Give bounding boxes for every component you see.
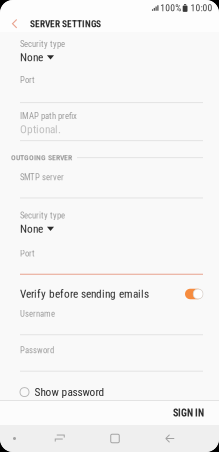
button[interactable]: IMAP path prefix — [20, 111, 203, 136]
button[interactable]: Back — [159, 425, 181, 452]
staticText: 100% — [160, 2, 181, 14]
staticText: 10:00 — [190, 2, 212, 14]
button[interactable]: Port — [20, 248, 203, 273]
button[interactable]: Username — [20, 309, 203, 333]
button[interactable]: Security type — [20, 39, 203, 64]
staticText: None — [20, 222, 43, 235]
button[interactable]: Home — [104, 425, 126, 452]
button[interactable]: Back — [0, 16, 30, 32]
staticText: Security type — [20, 210, 65, 221]
button[interactable]: Security type — [20, 210, 203, 235]
staticText: Port — [20, 248, 35, 259]
button[interactable]: Show password — [20, 385, 203, 399]
staticText: Password — [20, 345, 54, 355]
button[interactable]: Recents — [49, 425, 71, 452]
staticText: IMAP path prefix — [20, 111, 77, 121]
button[interactable]: Verify before sending emails — [20, 287, 203, 301]
button[interactable]: SIGN IN — [165, 401, 212, 425]
staticText: Security type — [20, 39, 65, 49]
staticText: Username — [20, 309, 55, 319]
staticText: Show password — [34, 385, 104, 399]
staticText: None — [20, 51, 43, 64]
staticText: SIGN IN — [173, 407, 204, 419]
staticText: Verify before sending emails — [20, 287, 149, 301]
staticText: Optional. — [20, 123, 61, 136]
button[interactable]: Port — [20, 75, 203, 100]
staticText: SERVER SETTINGS — [30, 18, 101, 29]
button[interactable]: SMTP server — [20, 172, 203, 197]
staticText: OUTGOING SERVER — [11, 153, 72, 162]
button[interactable]: Password — [20, 345, 203, 370]
staticText: SMTP server — [20, 172, 64, 182]
staticText: Port — [20, 75, 35, 85]
